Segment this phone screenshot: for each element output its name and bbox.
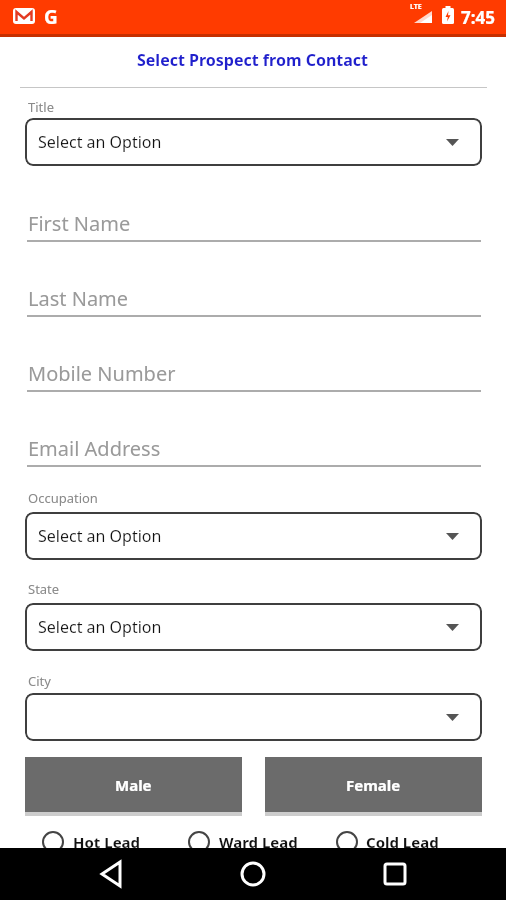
staticText: Hot Lead: [73, 832, 141, 852]
button[interactable]: Select an Option: [25, 118, 482, 166]
staticText: Male: [115, 775, 152, 795]
button[interactable]: First Name: [27, 199, 481, 247]
staticText: Ward Lead: [219, 832, 298, 852]
button[interactable]: Select an Option: [25, 512, 482, 560]
staticText: Cold Lead: [366, 832, 439, 852]
button[interactable]: Email Address: [27, 424, 481, 472]
staticText: First Name: [28, 210, 131, 237]
staticText: Select an Option: [38, 131, 162, 153]
staticText: Mobile Number: [28, 360, 176, 387]
staticText: State: [28, 580, 60, 598]
button[interactable]: Select an Option: [25, 603, 482, 651]
button[interactable]: Cold Lead: [336, 824, 450, 850]
button[interactable]: Ward Lead: [188, 824, 303, 850]
button[interactable]: [237, 858, 269, 890]
button[interactable]: Mobile Number: [27, 349, 481, 397]
staticText: Select an Option: [38, 525, 162, 547]
button[interactable]: [96, 858, 128, 890]
button[interactable]: Hot Lead: [42, 824, 157, 850]
staticText: 7:45: [461, 6, 495, 29]
staticText: City: [28, 672, 51, 690]
button[interactable]: Last Name: [27, 274, 481, 322]
staticText: Last Name: [28, 285, 129, 312]
button[interactable]: [25, 693, 482, 741]
staticText: Email Address: [28, 435, 161, 462]
staticText: Female: [346, 775, 401, 795]
staticText: Occupation: [28, 489, 98, 507]
button[interactable]: [379, 858, 411, 890]
button[interactable]: Male: [25, 757, 242, 812]
staticText: Select an Option: [38, 616, 162, 638]
button[interactable]: Female: [265, 757, 482, 812]
staticText: LTE: [410, 2, 422, 12]
staticText: G: [44, 4, 58, 30]
staticText: Select Prospect from Contact: [137, 49, 369, 71]
button[interactable]: Select Prospect from Contact: [137, 49, 369, 71]
staticText: Title: [28, 98, 54, 116]
